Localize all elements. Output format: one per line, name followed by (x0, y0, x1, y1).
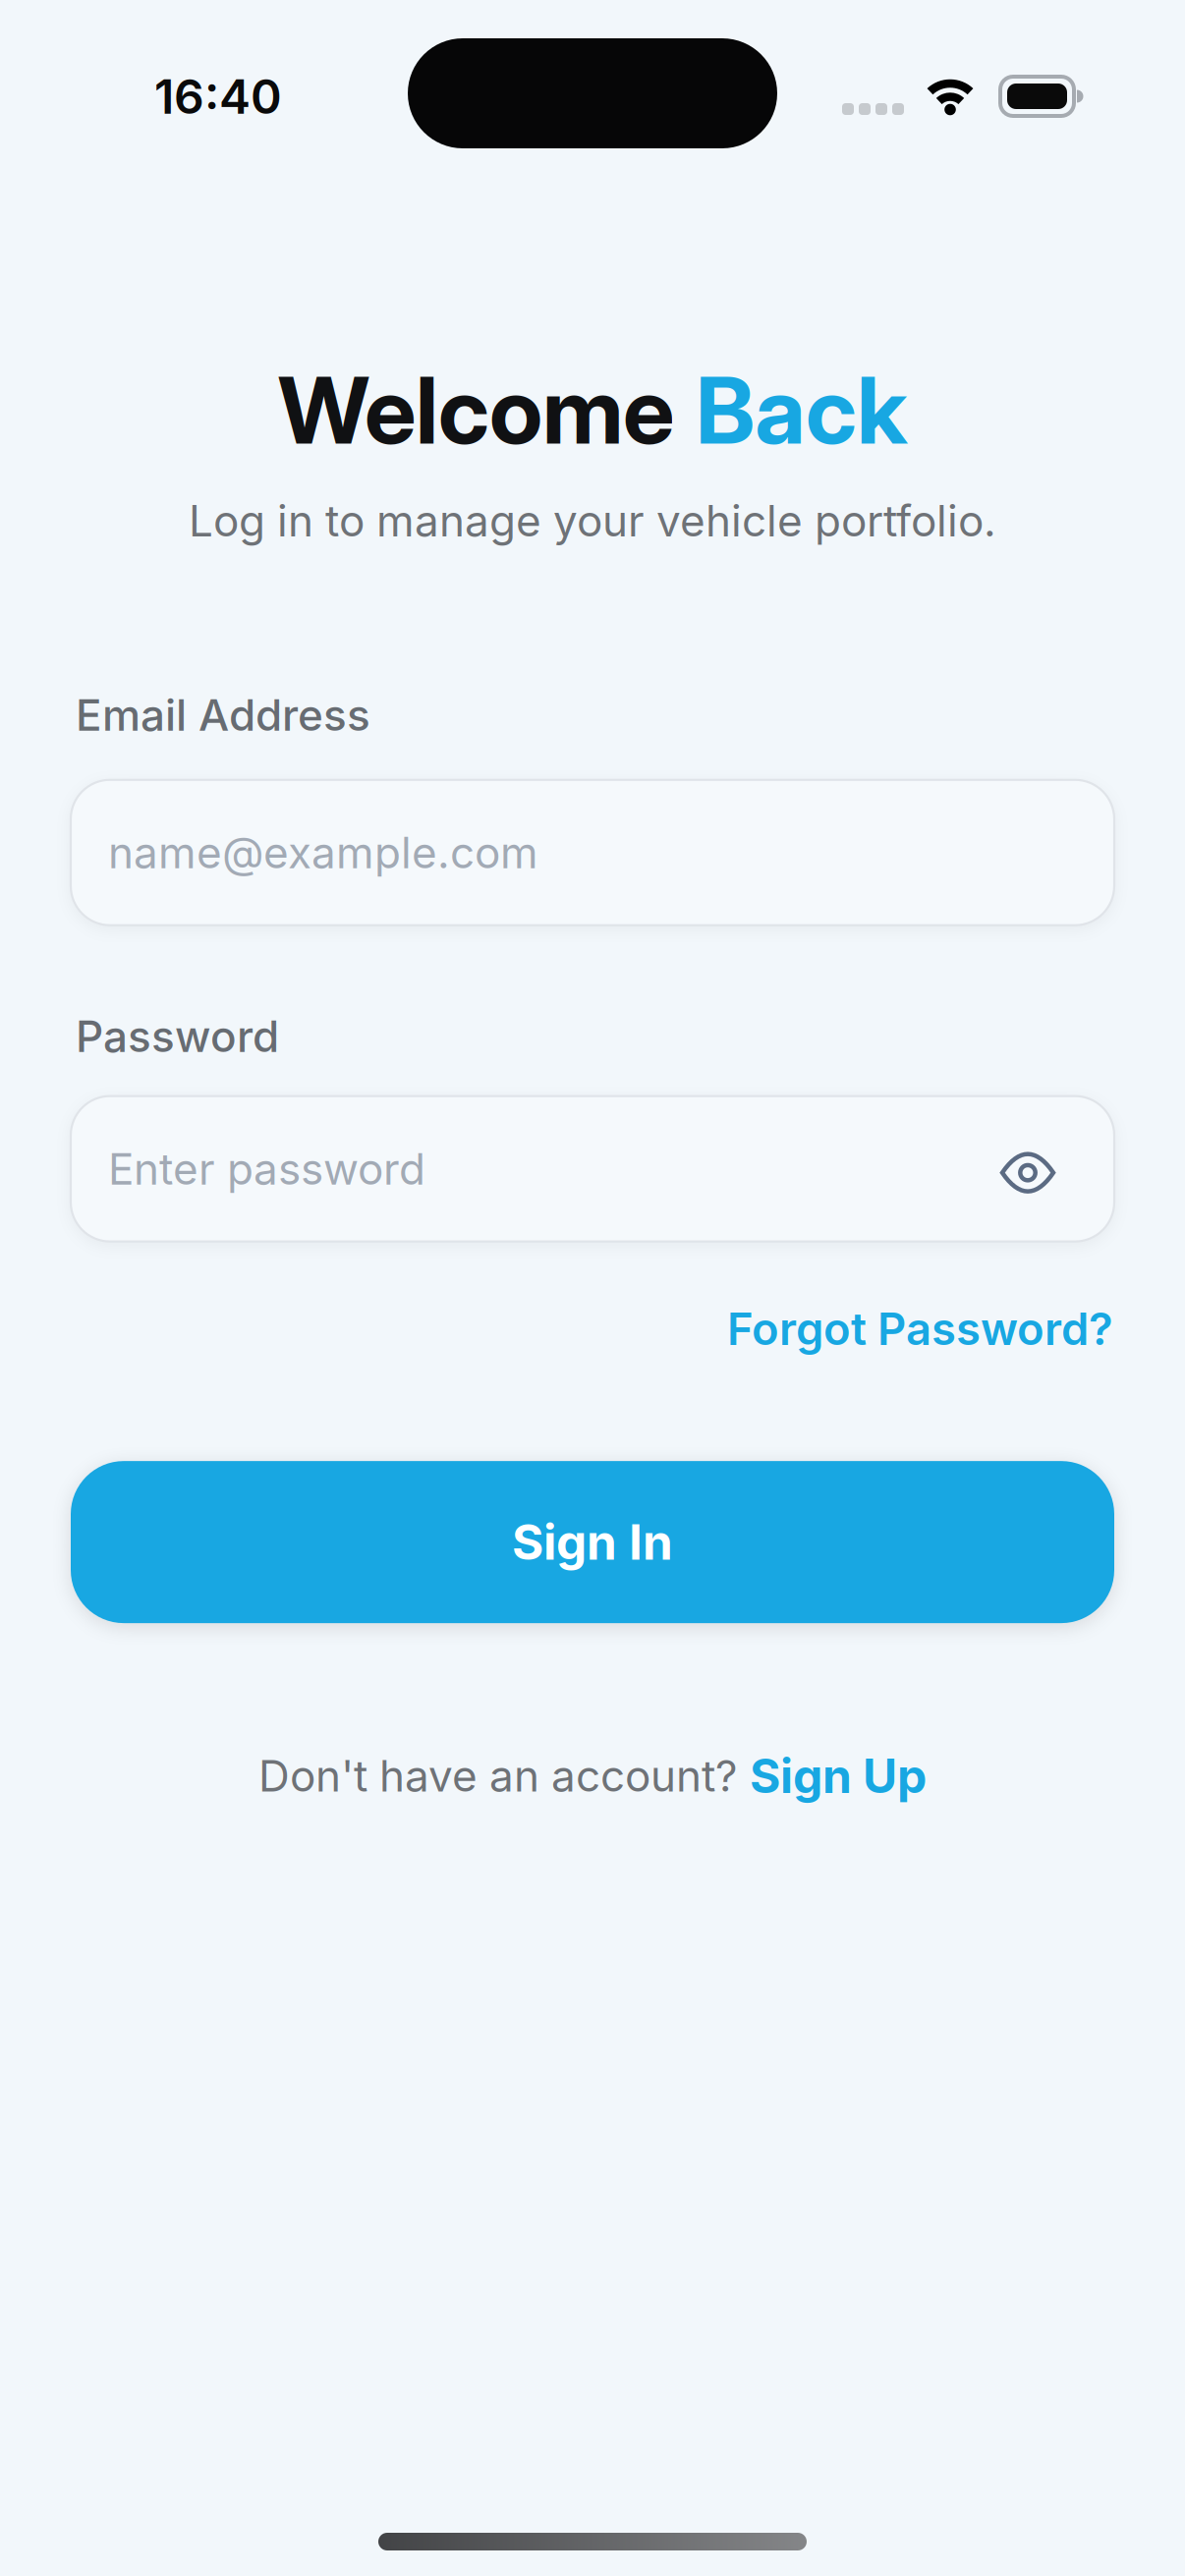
staticText: Password (76, 1011, 279, 1062)
staticText: name@example.com (108, 827, 538, 878)
button[interactable]: Sign In (71, 1461, 1114, 1623)
button[interactable]: Sign Up (750, 1748, 927, 1803)
staticText: Back (696, 355, 907, 466)
button[interactable]: Forgot Password? (727, 1302, 1113, 1355)
button[interactable]: Enter password (71, 1096, 1114, 1242)
staticText: Welcome (278, 355, 674, 466)
staticText: 16:40 (154, 69, 282, 124)
button[interactable] (1000, 1145, 1055, 1192)
staticText: Email Address (76, 689, 370, 740)
staticText: Enter password (108, 1143, 425, 1194)
staticText: Log in to manage your vehicle portfolio. (189, 495, 996, 546)
staticText: Sign Up (750, 1748, 927, 1803)
button[interactable]: name@example.com (71, 780, 1114, 925)
staticText: Forgot Password? (727, 1302, 1113, 1355)
staticText: Sign In (512, 1513, 673, 1571)
staticText: Don't have an account? (258, 1750, 737, 1801)
